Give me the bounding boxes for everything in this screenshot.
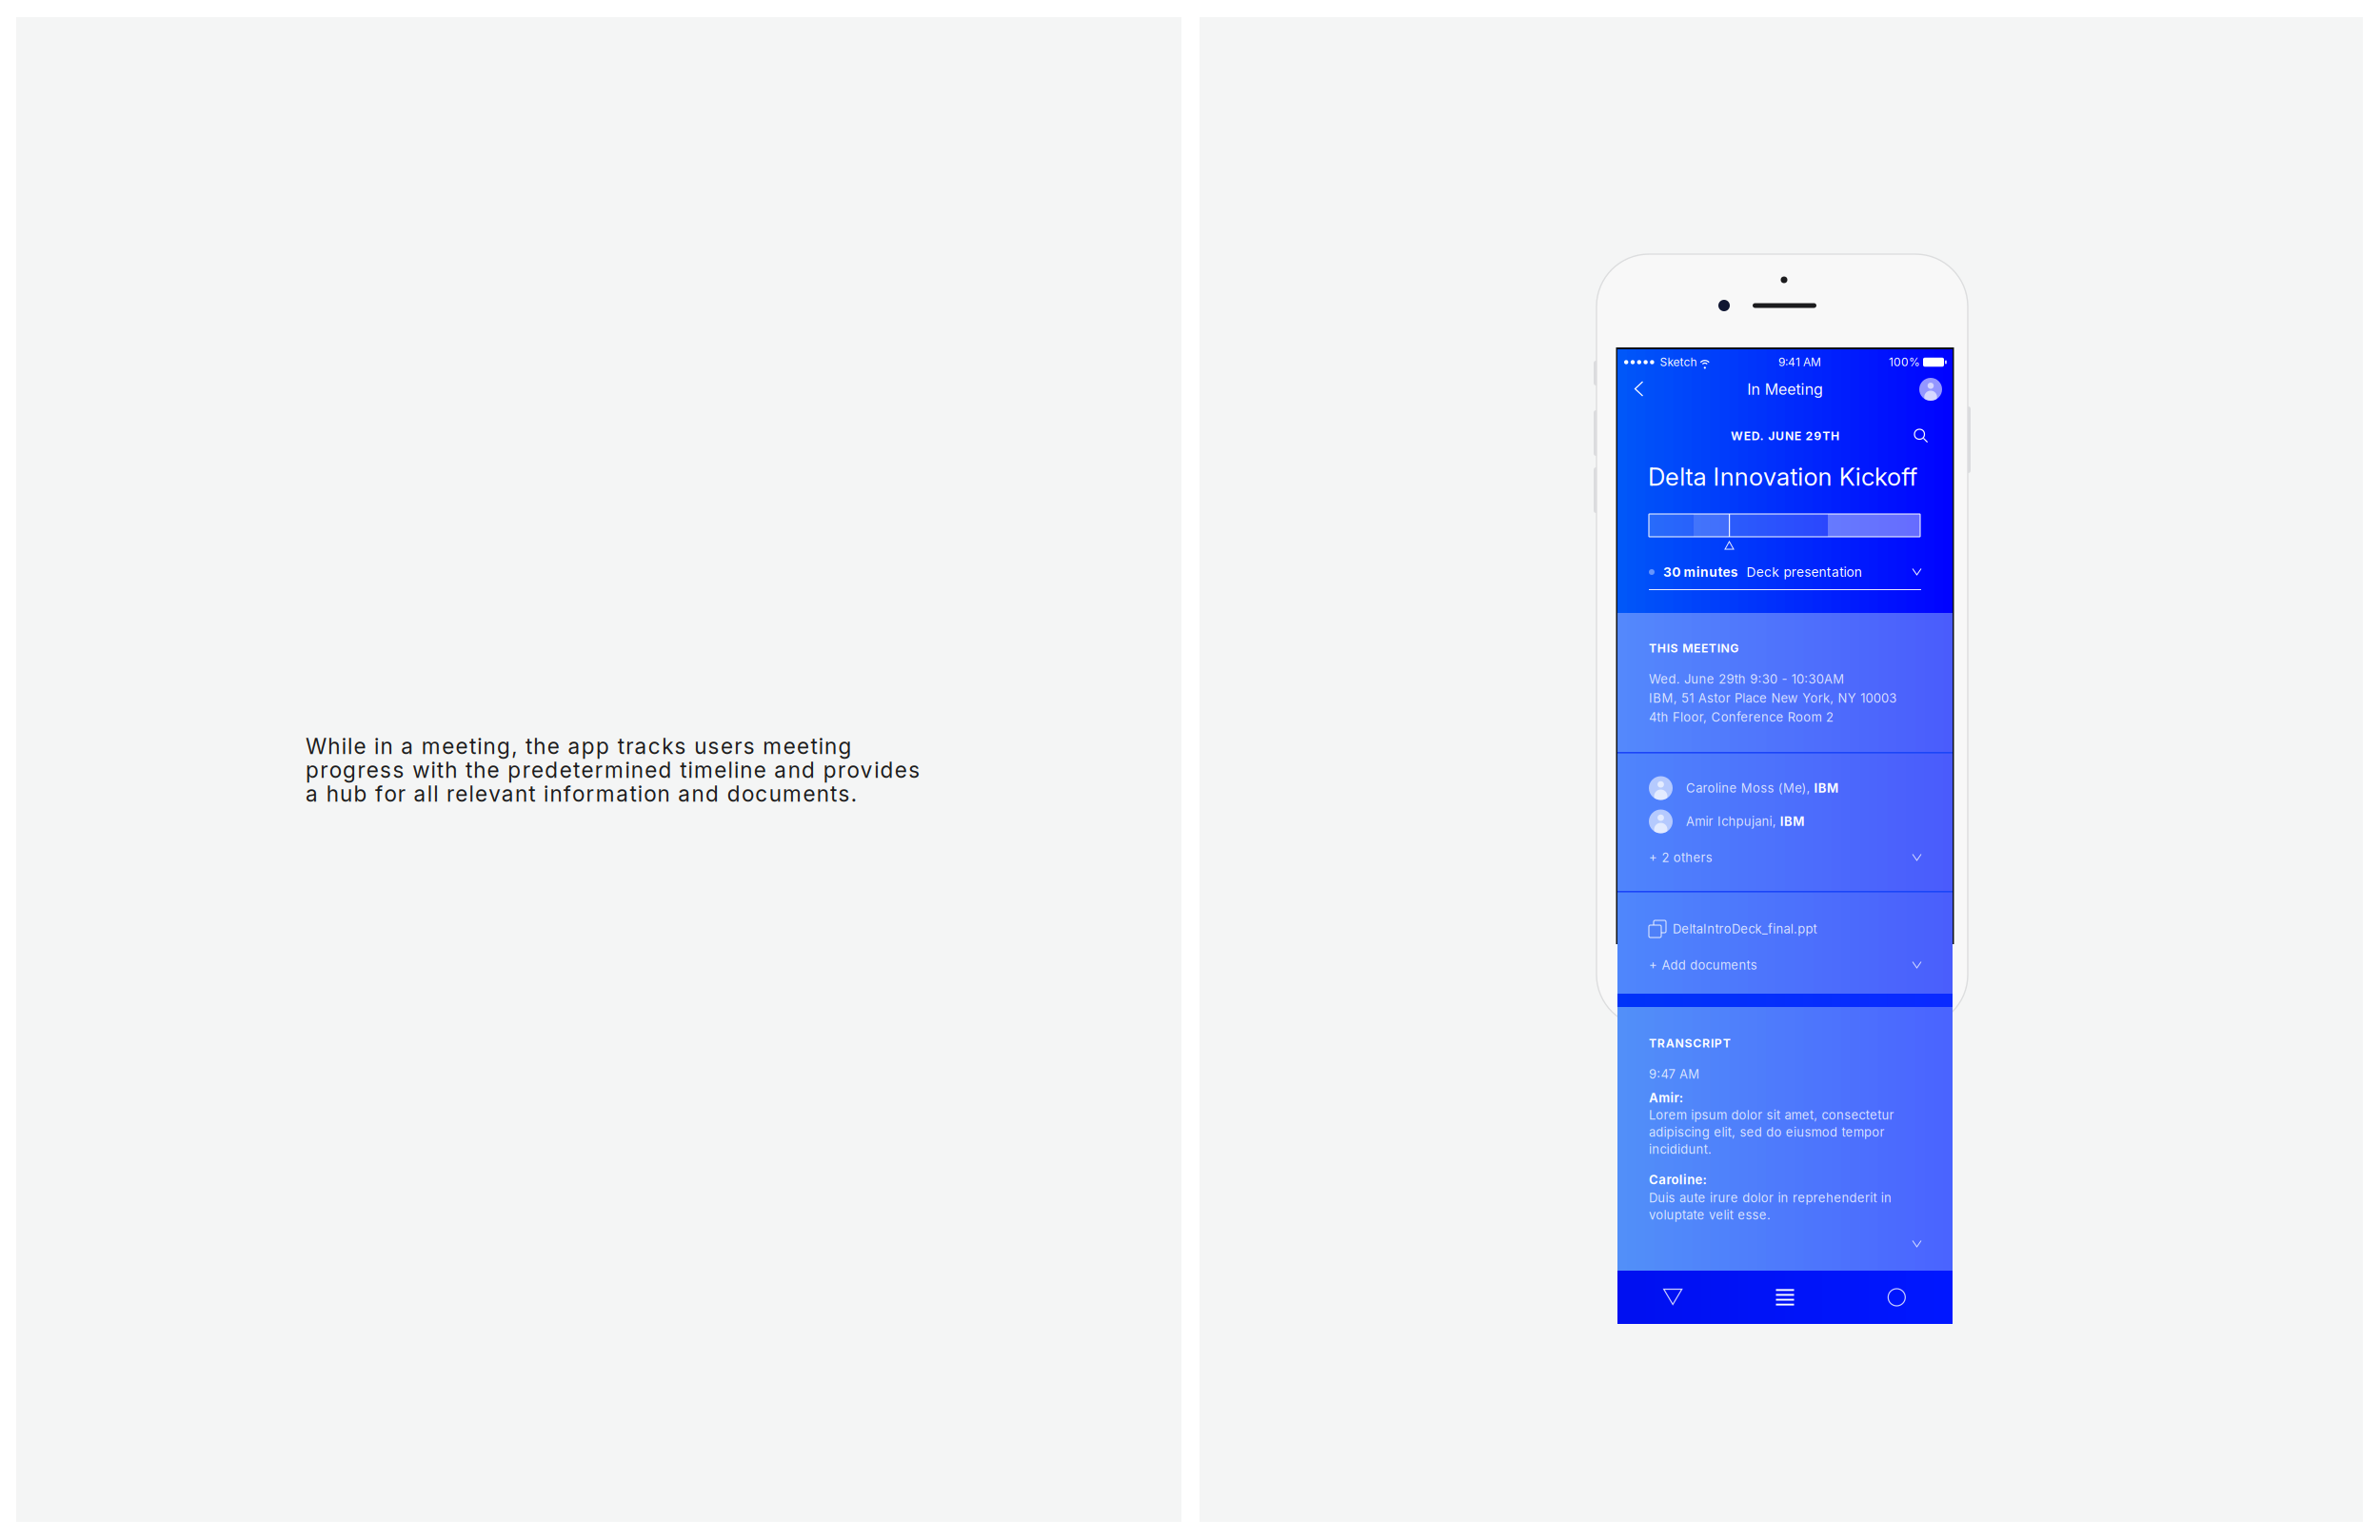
button[interactable]: Record [1841,1271,1953,1324]
staticText: 100% [1889,355,1920,369]
staticText: 9:41 AM [1778,355,1821,369]
button[interactable]: Menu [1729,1271,1841,1324]
staticText: TRANSCRIPT [1649,1036,1730,1050]
staticText: Lorem ipsum dolor sit amet, consectetur [1649,1108,1894,1123]
staticText: DeltaIntroDeck_final.ppt [1673,921,1817,936]
button[interactable]: Expand transcript [1649,1235,1921,1253]
staticText: progress with the predetermined timeline… [306,757,920,783]
staticText: Duis aute irure dolor in reprehenderit i… [1649,1190,1892,1205]
staticText: 4th Floor, Conference Room 2 [1649,710,1833,725]
button[interactable]: Filter [1617,1271,1729,1324]
button[interactable]: + Add documents [1649,956,1921,975]
staticText: 9:47 AM [1649,1067,1700,1082]
staticText: Deck presentation [1747,564,1862,580]
staticText: IBM [1780,814,1804,829]
staticText: Sketch [1660,355,1697,369]
staticText: Amir Ichpujani, [1686,814,1780,829]
button[interactable]: Back [1617,370,1661,408]
staticText: Wed. June 29th 9:30 - 10:30AM [1649,672,1844,687]
staticText: 30 minutes [1663,564,1738,580]
staticText: While in a meeting, the app tracks users… [306,733,851,759]
staticText: voluptate velit esse. [1649,1207,1771,1222]
button[interactable]: + 2 others [1649,848,1921,867]
staticText: Amir: [1649,1090,1683,1105]
button[interactable]: Amir Ichpujani, [1649,809,1921,834]
button[interactable]: 30 minutes [1649,563,1921,590]
staticText: In Meeting [1747,380,1823,399]
staticText: + 2 others [1649,850,1712,865]
staticText: IBM [1814,781,1838,796]
staticText: a hub for all relevant information and d… [306,781,857,807]
staticText: WED. JUNE 29TH [1731,429,1839,443]
staticText: adipiscing elit, sed do eiusmod tempor [1649,1125,1884,1140]
staticText: Caroline Moss (Me), [1686,781,1814,796]
button[interactable]: Caroline Moss (Me), [1649,776,1921,800]
staticText: Delta Innovation Kickoff [1648,462,1918,492]
button[interactable]: DeltaIntroDeck_final.ppt [1649,918,1921,939]
staticText: + Add documents [1649,958,1757,973]
staticText: incididunt. [1649,1142,1712,1157]
button[interactable]: Profile [1909,370,1953,408]
staticText: THIS MEETING [1649,641,1739,655]
button[interactable]: Search [1907,424,1935,448]
staticText: IBM, 51 Astor Place New York, NY 10003 [1649,691,1896,706]
staticText: Caroline: [1649,1172,1707,1187]
